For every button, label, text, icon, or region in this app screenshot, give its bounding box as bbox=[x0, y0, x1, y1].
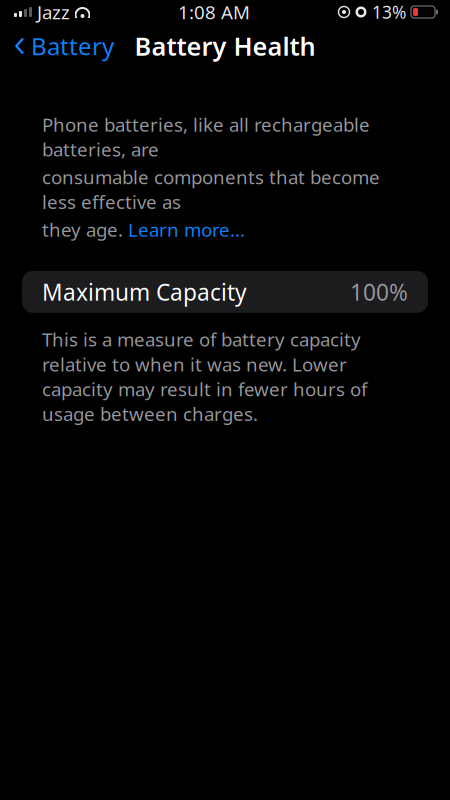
button[interactable]: Maximum Capacity bbox=[22, 271, 428, 313]
staticText: This is a measure of battery capacity re… bbox=[42, 327, 367, 426]
button[interactable]: Learn more... bbox=[128, 217, 245, 242]
staticText: Battery Health bbox=[134, 29, 315, 63]
staticText: Learn more... bbox=[128, 217, 245, 242]
button[interactable]: Battery bbox=[0, 22, 128, 70]
staticText: they age. bbox=[42, 217, 128, 242]
staticText: consumable components that become less e… bbox=[42, 165, 380, 214]
staticText: Phone batteries, like all rechargeable b… bbox=[42, 112, 370, 162]
staticText: Battery bbox=[31, 30, 114, 62]
staticText: 13% bbox=[372, 0, 406, 23]
staticText: 100% bbox=[350, 277, 408, 307]
staticText: Jazz bbox=[37, 0, 70, 24]
staticText: 1:08 AM bbox=[178, 0, 250, 24]
staticText: Maximum Capacity bbox=[42, 277, 247, 307]
